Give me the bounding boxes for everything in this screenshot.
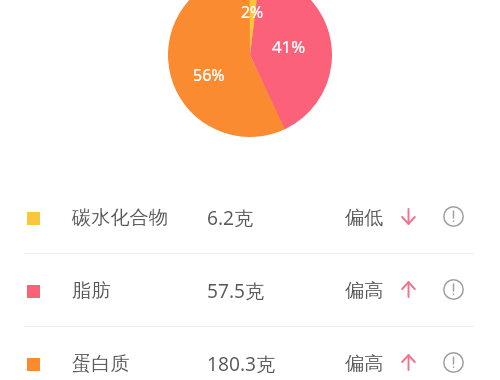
button[interactable]: More information: [443, 279, 464, 300]
button[interactable]: Trending above range: [401, 354, 416, 371]
button[interactable]: 碳水化合物: [0, 182, 500, 254]
staticText: 碳水化合物: [72, 206, 168, 230]
staticText: 蛋白质: [72, 352, 130, 376]
staticText: 偏高: [345, 352, 384, 376]
staticText: 脂肪: [72, 279, 111, 303]
staticText: 6.2克: [207, 204, 254, 230]
staticText: 偏低: [345, 206, 384, 230]
button[interactable]: Trending above range: [401, 281, 416, 298]
button[interactable]: More information: [443, 352, 464, 373]
staticText: 2%: [241, 1, 264, 23]
staticText: 偏高: [345, 279, 384, 303]
button[interactable]: 脂肪: [0, 255, 500, 327]
staticText: 180.3克: [207, 350, 276, 376]
button[interactable]: More information: [443, 206, 464, 227]
button[interactable]: 蛋白质: [0, 328, 500, 380]
staticText: 57.5克: [207, 277, 265, 303]
staticText: 56%: [193, 64, 225, 86]
staticText: 41%: [272, 35, 306, 58]
button[interactable]: Trending below range: [401, 208, 416, 225]
